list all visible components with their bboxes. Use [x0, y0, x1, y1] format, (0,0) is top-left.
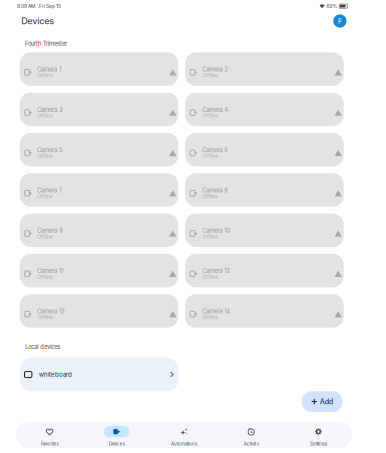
staticText: Local devices — [25, 343, 60, 350]
button[interactable]: Camera 11 — [20, 254, 178, 287]
staticText: whiteboard — [39, 371, 72, 378]
staticText: Offline — [37, 112, 53, 119]
button[interactable]: whiteboard — [20, 358, 179, 391]
staticText: Camera 6 — [202, 146, 228, 154]
staticText: Add — [320, 397, 333, 406]
staticText: Favorites — [41, 441, 59, 446]
staticText: Offline — [202, 72, 218, 78]
staticText: Camera 1 — [37, 66, 61, 73]
button[interactable]: Camera 14 — [185, 294, 344, 328]
button[interactable]: Camera 5 — [20, 133, 178, 166]
staticText: Camera 13 — [37, 308, 65, 315]
staticText: Offline — [37, 72, 53, 78]
button[interactable]: Account — [333, 14, 346, 28]
staticText: Offline — [202, 112, 218, 119]
staticText: Offline — [202, 153, 218, 159]
staticText: Camera 8 — [202, 187, 228, 194]
button[interactable]: Camera 3 — [20, 93, 178, 126]
button[interactable]: Settings — [285, 422, 352, 448]
button[interactable]: Camera 6 — [185, 133, 344, 166]
button[interactable]: Camera 12 — [185, 254, 344, 287]
button[interactable]: Automations — [150, 422, 218, 448]
staticText: Automations — [171, 441, 197, 446]
staticText: Camera 10 — [202, 227, 230, 234]
button[interactable]: Camera 9 — [20, 213, 178, 247]
staticText: Camera 2 — [202, 66, 228, 73]
button[interactable]: Add — [302, 391, 343, 412]
staticText: Offline — [202, 274, 218, 280]
button[interactable]: Camera 10 — [185, 213, 344, 247]
staticText: Offline — [202, 233, 218, 240]
staticText: Offline — [37, 193, 53, 199]
button[interactable]: Camera 13 — [20, 294, 178, 328]
button[interactable]: Activity — [218, 422, 285, 448]
button[interactable]: Favorites — [16, 422, 83, 448]
staticText: Activity — [244, 441, 259, 446]
staticText: Offline — [37, 233, 53, 240]
staticText: Camera 11 — [37, 267, 63, 275]
staticText: Camera 7 — [37, 187, 62, 194]
button[interactable]: Camera 8 — [185, 173, 344, 207]
staticText: Fourth Trimester — [25, 40, 67, 47]
button[interactable]: Camera 1 — [20, 52, 178, 86]
staticText: Camera 3 — [37, 106, 63, 113]
staticText: Offline — [202, 193, 218, 199]
staticText: Offline — [37, 274, 53, 280]
button[interactable]: Camera 4 — [185, 93, 344, 126]
staticText: 69% — [326, 3, 337, 9]
button[interactable]: Camera 2 — [185, 52, 344, 86]
staticText: 8:09 AM Fri Sep 15 — [17, 3, 61, 9]
staticText: Offline — [37, 153, 53, 159]
staticText: Camera 14 — [202, 308, 230, 315]
staticText: Offline — [37, 314, 53, 320]
staticText: F — [338, 17, 342, 25]
staticText: Offline — [202, 314, 218, 320]
staticText: Devices — [109, 441, 125, 446]
staticText: Camera 4 — [202, 106, 228, 113]
staticText: Camera 5 — [37, 146, 63, 154]
staticText: Camera 9 — [37, 227, 63, 234]
staticText: Devices — [21, 15, 54, 26]
button[interactable]: Devices — [83, 422, 150, 448]
staticText: Settings — [310, 441, 327, 446]
button[interactable]: Camera 7 — [20, 173, 178, 207]
staticText: Camera 12 — [202, 267, 230, 275]
